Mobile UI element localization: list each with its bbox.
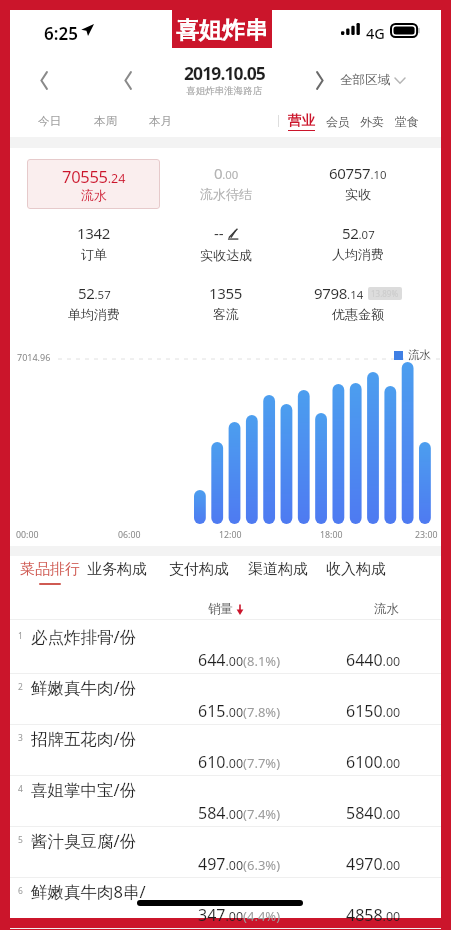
button[interactable]: 业务构成 [87,556,147,586]
staticText: 9798.14 [314,283,364,303]
button[interactable]: 营业 [287,105,315,137]
button[interactable]: 70555.24 [27,159,160,209]
button[interactable]: 52.07 [300,223,416,269]
staticText: 客流 [213,306,239,322]
staticText: 347.00(4.4%) [198,904,281,926]
staticText: 4858.00 [346,904,401,926]
staticText: 订单 [81,246,107,262]
button[interactable]: 2 [10,674,441,725]
staticText: 6 [18,885,23,897]
staticText: 610.00(7.7%) [198,751,281,773]
staticText: 喜姐掌中宝/份 [31,778,137,801]
button[interactable]: 1 [10,623,441,674]
button[interactable]: 5 [10,827,441,878]
staticText: 52.07 [342,223,375,243]
button[interactable]: 1342 [36,223,152,269]
staticText: 12:00 [219,529,242,541]
staticText: 06:00 [118,529,141,541]
staticText: 人均消费 [332,246,384,262]
staticText: 4 [18,783,23,795]
button[interactable]: 9798.14 [300,283,416,329]
staticText: 流水 [81,187,107,203]
staticText: 外卖 [360,114,384,129]
button[interactable]: 收入构成 [326,556,386,586]
staticText: 鲜嫩真牛肉8串/ [31,880,146,903]
staticText: 70555.24 [62,165,126,187]
button[interactable]: 销量 [208,601,244,617]
staticText: 1355 [209,283,243,303]
staticText: 52.57 [78,283,111,303]
staticText: 18:00 [320,529,343,541]
button[interactable]: 今日 [33,105,65,137]
staticText: 收入构成 [326,560,386,579]
staticText: 支付构成 [169,560,229,579]
staticText: 必点炸排骨/份 [31,625,137,648]
button[interactable]: 60757.10 [300,163,416,209]
staticText: 流水 [408,348,431,362]
button[interactable]: 堂食 [393,105,421,137]
staticText: 00:00 [16,529,39,541]
staticText: 本月 [149,114,172,128]
staticText: 0.00 [214,163,239,183]
staticText: 今日 [38,114,61,128]
staticText: 2019.10.05 [184,61,265,85]
button[interactable]: 会员 [324,105,352,137]
button[interactable]: 3 [10,725,441,776]
staticText: 23:00 [415,529,438,541]
staticText: 3 [18,732,23,744]
staticText: 6440.00 [346,649,401,671]
staticText: 5 [18,834,23,846]
button[interactable]: -- [180,223,272,269]
staticText: 会员 [326,114,350,129]
staticText: 招牌五花肉/份 [31,727,137,750]
button[interactable]: 2019.10.05 [154,61,294,97]
staticText: 全部区域 [340,72,390,88]
staticText: 营业 [288,112,315,129]
button[interactable]: 菜品排行 [19,556,81,596]
staticText: 本周 [94,114,117,128]
button[interactable]: 本周 [89,105,121,137]
staticText: 4G [366,23,385,43]
staticText: 6150.00 [346,700,401,722]
staticText: 鲜嫩真牛肉/份 [31,676,137,699]
staticText: 4970.00 [346,853,401,875]
staticText: 6100.00 [346,751,401,773]
staticText: 644.00(8.1%) [198,649,281,671]
staticText: 喜姐炸串 [176,16,268,45]
staticText: 业务构成 [87,560,147,579]
staticText: 615.00(7.8%) [198,700,281,722]
button[interactable]: 4 [10,776,441,827]
staticText: 1 [18,630,23,642]
staticText: 497.00(6.3%) [198,853,281,875]
button[interactable]: 本月 [144,105,176,137]
staticText: 1342 [77,223,111,243]
staticText: 584.00(7.4%) [198,802,281,824]
button[interactable]: 外卖 [358,105,386,137]
button[interactable]: 全部区域 [340,64,436,96]
staticText: 60757.10 [329,163,387,183]
staticText: 单均消费 [68,306,120,322]
button[interactable]: Back [25,64,63,96]
button[interactable]: Next day [301,64,337,96]
button[interactable]: 0.00 [168,163,284,209]
button[interactable]: 1355 [168,283,284,329]
staticText: 5840.00 [346,802,401,824]
staticText: -- [214,223,224,243]
staticText: 堂食 [395,114,419,129]
button[interactable]: 渠道构成 [248,556,308,586]
staticText: 菜品排行 [20,560,80,579]
staticText: 13.89% [371,288,399,299]
button[interactable]: 支付构成 [169,556,229,586]
button[interactable]: 52.57 [36,283,152,329]
button[interactable]: 6 [10,878,441,929]
button[interactable]: Previous day [109,64,147,96]
staticText: 喜姐炸串淮海路店 [186,85,262,97]
staticText: 6:25 [44,22,78,45]
staticText: 酱汁臭豆腐/份 [31,829,137,852]
staticText: 实收 [345,186,371,202]
staticText: 优惠金额 [332,306,384,322]
staticText: 销量 [208,601,233,617]
staticText: 7014.96 [17,351,51,363]
staticText: 2 [18,681,23,693]
staticText: 流水待结 [200,186,252,202]
